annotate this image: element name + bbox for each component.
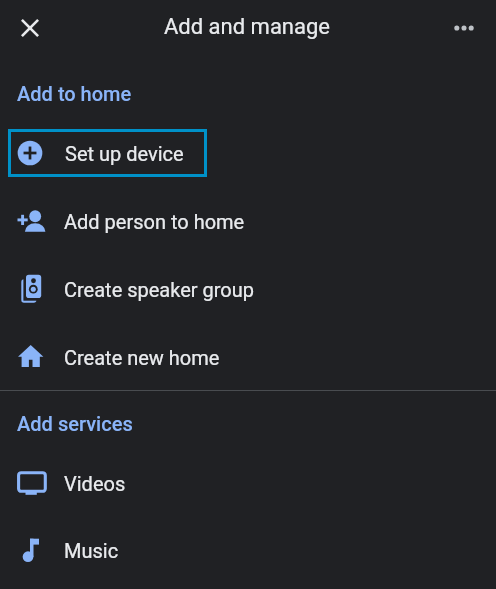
button[interactable]: Videos xyxy=(0,459,496,507)
button[interactable]: Music xyxy=(0,526,496,574)
button[interactable]: More options xyxy=(446,10,482,46)
button[interactable]: Add person to home xyxy=(0,197,496,245)
staticText: Music xyxy=(64,539,119,562)
staticText: Create new home xyxy=(64,346,220,369)
staticText: Add and manage xyxy=(0,14,495,40)
button[interactable]: Create new home xyxy=(0,333,496,381)
staticText: Add to home xyxy=(17,82,132,105)
staticText: Set up device xyxy=(65,142,184,165)
button[interactable]: Close xyxy=(12,10,48,46)
staticText: Add person to home xyxy=(64,210,245,233)
staticText: Create speaker group xyxy=(64,278,254,301)
staticText: Videos xyxy=(64,472,126,495)
staticText: Add services xyxy=(17,412,133,435)
button[interactable]: Create speaker group xyxy=(0,265,496,313)
button[interactable]: Set up device xyxy=(8,129,207,177)
